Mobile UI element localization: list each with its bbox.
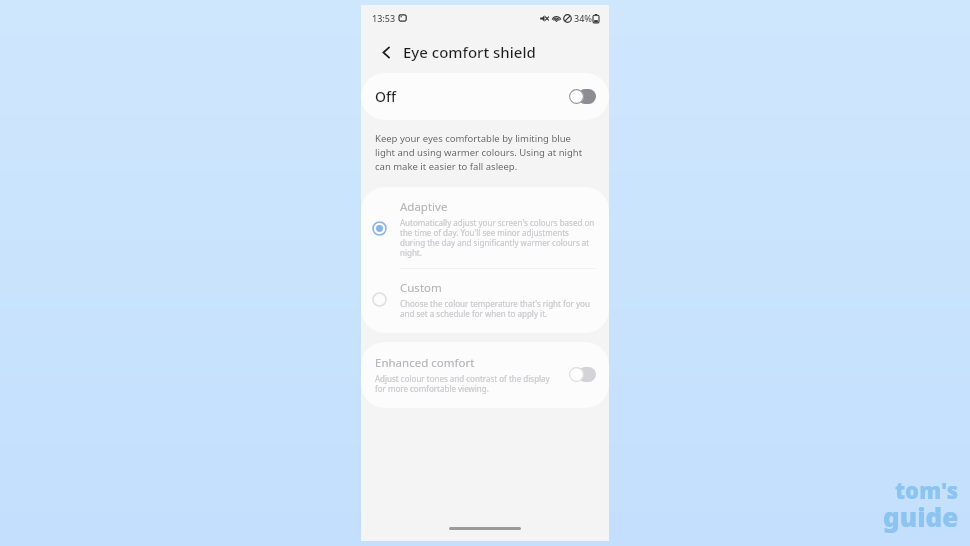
staticText: 13:53 <box>372 12 396 24</box>
staticText: Custom <box>400 280 442 296</box>
staticText: guide <box>883 499 959 534</box>
staticText: Adaptive <box>400 199 448 215</box>
button[interactable]: Custom <box>361 269 609 333</box>
staticText: 34% <box>574 12 592 24</box>
staticText: Off <box>375 87 396 106</box>
staticText: tom's <box>895 475 959 505</box>
button[interactable]: Back <box>374 40 398 64</box>
staticText: Keep your eyes comfortable by limiting b… <box>375 132 593 173</box>
staticText: Choose the colour temperature that's rig… <box>400 298 595 319</box>
button[interactable]: Enhanced comfort <box>361 342 609 408</box>
staticText: Eye comfort shield <box>403 42 536 62</box>
staticText: Automatically adjust your screen's colou… <box>400 217 595 258</box>
button[interactable]: Off <box>361 73 609 120</box>
staticText: Enhanced comfort <box>375 355 475 371</box>
staticText: Adjust colour tones and contrast of the … <box>375 373 561 394</box>
button[interactable]: Adaptive <box>361 187 609 268</box>
